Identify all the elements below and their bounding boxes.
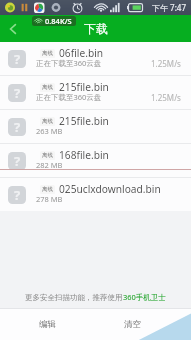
staticText: 离线	[42, 50, 53, 57]
staticText: 1.25M/s	[151, 92, 181, 103]
staticText: 0.84K/S	[45, 16, 72, 26]
staticText: ?	[14, 84, 21, 102]
button[interactable]: 编辑	[0, 309, 95, 340]
staticText: 离线	[42, 118, 53, 125]
staticText: 离线	[42, 152, 53, 159]
staticText: 06file.bin	[59, 46, 104, 60]
staticText: 168file.bin	[59, 148, 109, 162]
staticText: 025uclxdownload.bin	[59, 182, 161, 196]
button[interactable]: ?	[0, 110, 191, 143]
button[interactable]: 更多安全扫描功能，推荐使用	[0, 286, 191, 308]
button[interactable]: Back	[0, 15, 26, 42]
staticText: 215file.bin	[59, 114, 109, 128]
staticText: 下午 7:47	[152, 2, 186, 13]
staticText: ?	[14, 118, 21, 136]
staticText: 360手机卫士	[123, 292, 166, 302]
staticText: 282 MB	[36, 160, 63, 170]
staticText: 正在下载至360云盘	[36, 92, 102, 102]
button[interactable]: ?	[0, 76, 191, 109]
staticText: ?	[14, 186, 21, 204]
staticText: 编辑	[39, 319, 56, 330]
staticText: ?	[14, 50, 21, 68]
staticText: 215file.bin	[59, 80, 109, 94]
staticText: 263 MB	[36, 126, 63, 136]
staticText: 下载	[84, 21, 108, 36]
staticText: 正在下载至360云盘	[36, 58, 102, 68]
staticText: 离线	[42, 186, 53, 193]
staticText: 1.25M/s	[151, 58, 181, 69]
button[interactable]: ?	[0, 144, 191, 177]
staticText: 离线	[42, 84, 53, 91]
button[interactable]: 清空	[95, 309, 191, 340]
staticText: 清空	[124, 319, 141, 330]
staticText: ?	[14, 152, 21, 170]
staticText: 278 MB	[36, 194, 63, 204]
button[interactable]: ?	[0, 42, 191, 75]
staticText: 更多安全扫描功能，推荐使用	[25, 293, 123, 302]
button[interactable]: ?	[0, 178, 191, 211]
